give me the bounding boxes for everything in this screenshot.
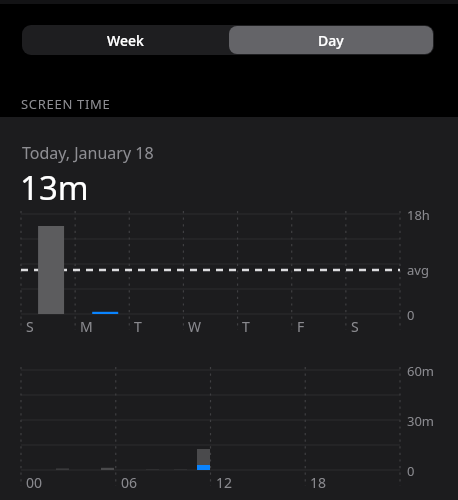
staticText: 18h — [407, 206, 430, 224]
button[interactable]: Today, January 18 — [0, 117, 458, 500]
staticText: avg — [407, 261, 429, 279]
staticText: 30m — [407, 412, 435, 430]
staticText: 18 — [310, 473, 327, 492]
staticText: W — [188, 317, 202, 336]
staticText: 00 — [26, 473, 43, 492]
staticText: 0 — [407, 306, 415, 324]
button[interactable]: Day — [229, 26, 433, 54]
button[interactable]: Week — [22, 25, 228, 55]
staticText: Today, January 18 — [22, 142, 154, 164]
staticText: 0 — [407, 462, 415, 480]
staticText: T — [134, 317, 142, 336]
staticText: 60m — [407, 362, 435, 380]
staticText: M — [80, 317, 93, 336]
staticText: F — [297, 317, 305, 336]
staticText: Day — [318, 31, 344, 50]
staticText: T — [242, 317, 250, 336]
staticText: S — [26, 317, 34, 336]
staticText: 06 — [121, 473, 138, 492]
staticText: Week — [107, 31, 144, 50]
staticText: 13m — [20, 165, 89, 210]
staticText: 12 — [216, 473, 233, 492]
staticText: SCREEN TIME — [21, 95, 111, 113]
staticText: S — [351, 317, 359, 336]
